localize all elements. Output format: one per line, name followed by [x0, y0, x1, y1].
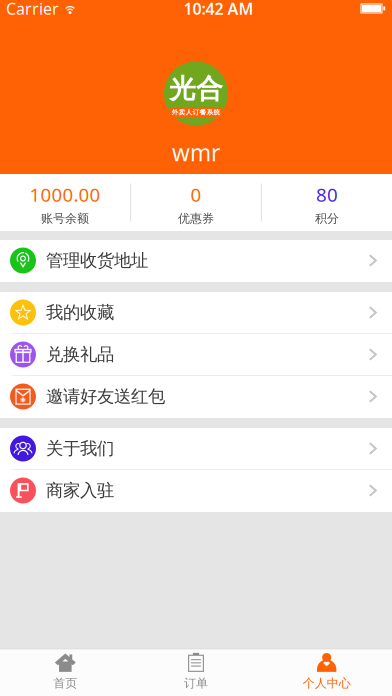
- staticText: 兑换礼品: [46, 344, 114, 365]
- staticText: 1000.00: [29, 182, 100, 207]
- staticText: 首页: [53, 676, 77, 691]
- staticText: 80: [316, 182, 338, 207]
- staticText: 商家入驻: [46, 480, 114, 501]
- button[interactable]: 管理收货地址: [0, 240, 392, 282]
- staticText: 个人中心: [303, 676, 351, 691]
- staticText: Carrier: [6, 0, 59, 19]
- button[interactable]: 商家入驻: [0, 470, 392, 512]
- staticText: 我的收藏: [46, 302, 114, 323]
- staticText: 管理收货地址: [46, 250, 148, 271]
- staticText: 光合: [169, 72, 223, 105]
- staticText: 关于我们: [46, 438, 114, 459]
- button[interactable]: 兑换礼品: [0, 334, 392, 376]
- staticText: 10:42 AM: [183, 0, 253, 19]
- staticText: 外卖人订餐系统: [171, 108, 220, 116]
- button[interactable]: 个人中心: [261, 649, 392, 696]
- staticText: 积分: [315, 211, 339, 226]
- staticText: wmr: [172, 137, 220, 167]
- staticText: 订单: [184, 676, 208, 691]
- button[interactable]: 我的收藏: [0, 292, 392, 334]
- staticText: 账号余额: [41, 211, 89, 226]
- button[interactable]: 邀请好友送红包: [0, 376, 392, 418]
- button[interactable]: 订单: [131, 649, 261, 696]
- button[interactable]: 首页: [0, 649, 131, 696]
- staticText: 0: [190, 182, 201, 207]
- staticText: 优惠券: [178, 211, 214, 226]
- button[interactable]: 关于我们: [0, 428, 392, 470]
- staticText: 邀请好友送红包: [46, 386, 165, 407]
